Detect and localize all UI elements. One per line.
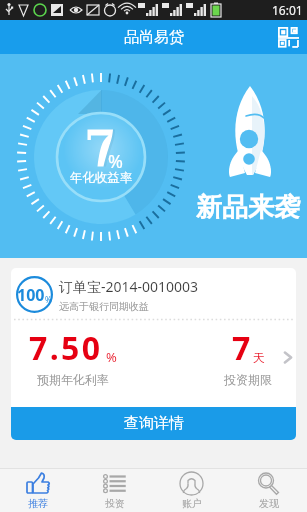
staticText: 16:01 <box>272 2 303 18</box>
staticText: 7.50 <box>29 326 103 370</box>
staticText: 预期年化利率 <box>37 372 109 387</box>
staticText: 天 <box>253 350 265 365</box>
staticText: % <box>106 348 117 366</box>
button[interactable]: 推荐 <box>0 469 76 512</box>
staticText: 年化收益率 <box>41 170 161 186</box>
button[interactable]: 查询详情 <box>11 407 296 440</box>
staticText: 发现 <box>259 497 279 510</box>
staticText: 7 <box>232 326 251 370</box>
staticText: 远高于银行同期收益 <box>59 300 149 313</box>
staticText: 品尚易贷 <box>124 28 184 47</box>
button[interactable]: 账户 <box>153 469 230 512</box>
staticText: 投资 <box>105 497 125 510</box>
staticText: % <box>108 149 123 174</box>
button[interactable]: 投资 <box>76 469 153 512</box>
staticText: 100 <box>17 284 45 306</box>
staticText: 投资期限 <box>224 372 272 387</box>
button[interactable]: Scan QR code <box>278 27 299 48</box>
staticText: 查询详情 <box>124 414 184 433</box>
staticText: 订单宝-2014-0010003 <box>59 277 199 296</box>
button[interactable]: 发现 <box>230 469 307 512</box>
staticText: % <box>45 294 52 305</box>
staticText: 推荐 <box>28 497 48 510</box>
staticText: 账户 <box>182 497 202 510</box>
staticText: 新品来袭 <box>196 191 300 224</box>
